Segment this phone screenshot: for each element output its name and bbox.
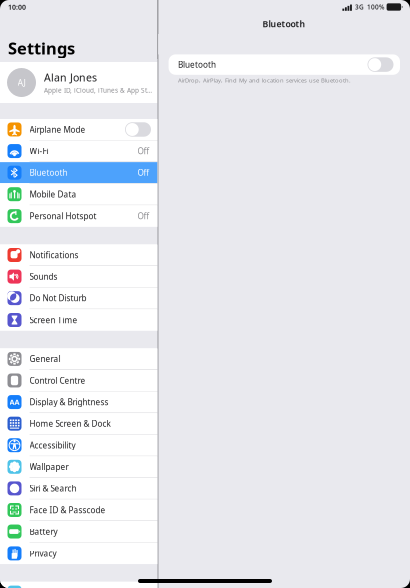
staticText: AA	[9, 397, 19, 407]
staticText: Home Screen & Dock	[29, 418, 110, 429]
button[interactable]: Siri & Search	[0, 478, 157, 499]
button[interactable]: Wallpaper	[0, 456, 157, 478]
staticText: Privacy	[29, 548, 56, 559]
staticText: Bluetooth	[29, 167, 67, 178]
button[interactable]: AA	[0, 392, 157, 413]
staticText: Do Not Disturb	[29, 293, 86, 303]
staticText: Control Centre	[29, 375, 85, 386]
staticText: Apple ID, iCloud, iTunes & App St…	[44, 86, 152, 94]
staticText: Screen Time	[29, 315, 77, 325]
staticText: Bluetooth	[263, 18, 306, 30]
staticText: AirDrop, AirPlay, Find My and location s…	[178, 76, 351, 84]
button[interactable]: Accessibility	[0, 435, 157, 456]
staticText: Off	[137, 167, 149, 178]
staticText: Display & Brightness	[29, 397, 108, 407]
staticText: Wallpaper	[29, 461, 68, 472]
button[interactable]: Personal Hotspot	[0, 205, 157, 227]
staticText: Siri & Search	[29, 483, 76, 494]
staticText: Airplane Mode	[29, 124, 85, 135]
staticText: Off	[137, 146, 149, 156]
button[interactable]: Privacy	[0, 543, 157, 564]
staticText: AJ	[17, 77, 25, 88]
button[interactable]: App Store	[0, 582, 157, 588]
button[interactable]: AJ	[0, 62, 157, 103]
button[interactable]: Notifications	[0, 244, 157, 266]
button[interactable]: Control Centre	[0, 370, 157, 392]
button[interactable]: Battery	[0, 521, 157, 543]
button[interactable]: Sounds	[0, 266, 157, 288]
staticText: 100%	[367, 3, 384, 11]
button[interactable]: Screen Time	[0, 309, 157, 331]
staticText: Alan Jones	[44, 70, 97, 84]
staticText: Mobile Data	[29, 189, 76, 200]
staticText: 3G	[355, 3, 364, 11]
staticText: General	[29, 353, 60, 364]
staticText: Settings	[8, 37, 75, 59]
staticText: Sounds	[29, 271, 57, 282]
button[interactable]: Airplane Mode	[0, 119, 157, 141]
button[interactable]: General	[0, 348, 157, 370]
staticText: Face ID & Passcode	[29, 505, 105, 515]
button[interactable]: Mobile Data	[0, 184, 157, 205]
button[interactable]: Bluetooth	[169, 54, 400, 75]
button[interactable]: Wi-Fi	[0, 141, 157, 162]
staticText: Wi-Fi	[29, 146, 48, 156]
staticText: Personal Hotspot	[29, 211, 96, 221]
button[interactable]: Home Screen & Dock	[0, 413, 157, 435]
button[interactable]: Do Not Disturb	[0, 288, 157, 309]
staticText: Bluetooth	[178, 59, 216, 70]
staticText: 10:00	[8, 2, 26, 12]
button[interactable]: Bluetooth	[0, 162, 157, 184]
staticText: Off	[137, 211, 149, 221]
staticText: Accessibility	[29, 440, 75, 451]
staticText: Notifications	[29, 250, 78, 260]
button[interactable]: Face ID & Passcode	[0, 499, 157, 521]
staticText: Battery	[29, 526, 57, 537]
